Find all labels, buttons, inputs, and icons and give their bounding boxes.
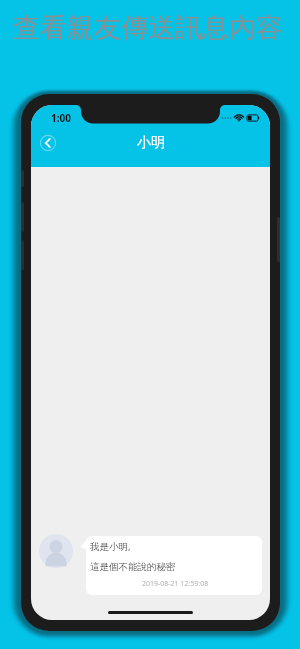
staticText: 這是個不能說的秘密 — [90, 561, 176, 573]
staticText: 查看親友傳送訊息內容 — [13, 11, 283, 45]
staticText: 小明 — [137, 134, 165, 152]
staticText: 2019-08-21 12:59:08 — [142, 579, 209, 589]
staticText: 1:00 — [51, 111, 71, 125]
staticText: 我是小明, — [90, 540, 131, 553]
button[interactable]: Back — [38, 133, 58, 153]
